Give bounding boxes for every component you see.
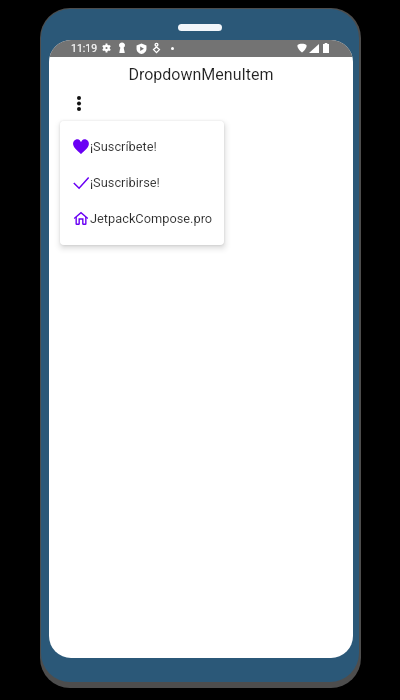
staticText: DropdownMenuItem xyxy=(128,65,274,84)
staticText: ¡Suscribirse! xyxy=(90,175,160,190)
button[interactable]: ¡Suscríbete! xyxy=(60,128,224,164)
button[interactable]: More options xyxy=(67,91,91,115)
staticText: JetpackCompose.pro xyxy=(90,211,213,226)
button[interactable]: JetpackCompose.pro xyxy=(60,200,224,236)
staticText: ¡Suscríbete! xyxy=(90,139,157,154)
button[interactable]: ¡Suscribirse! xyxy=(60,164,224,200)
staticText: 11:19 xyxy=(71,42,98,54)
